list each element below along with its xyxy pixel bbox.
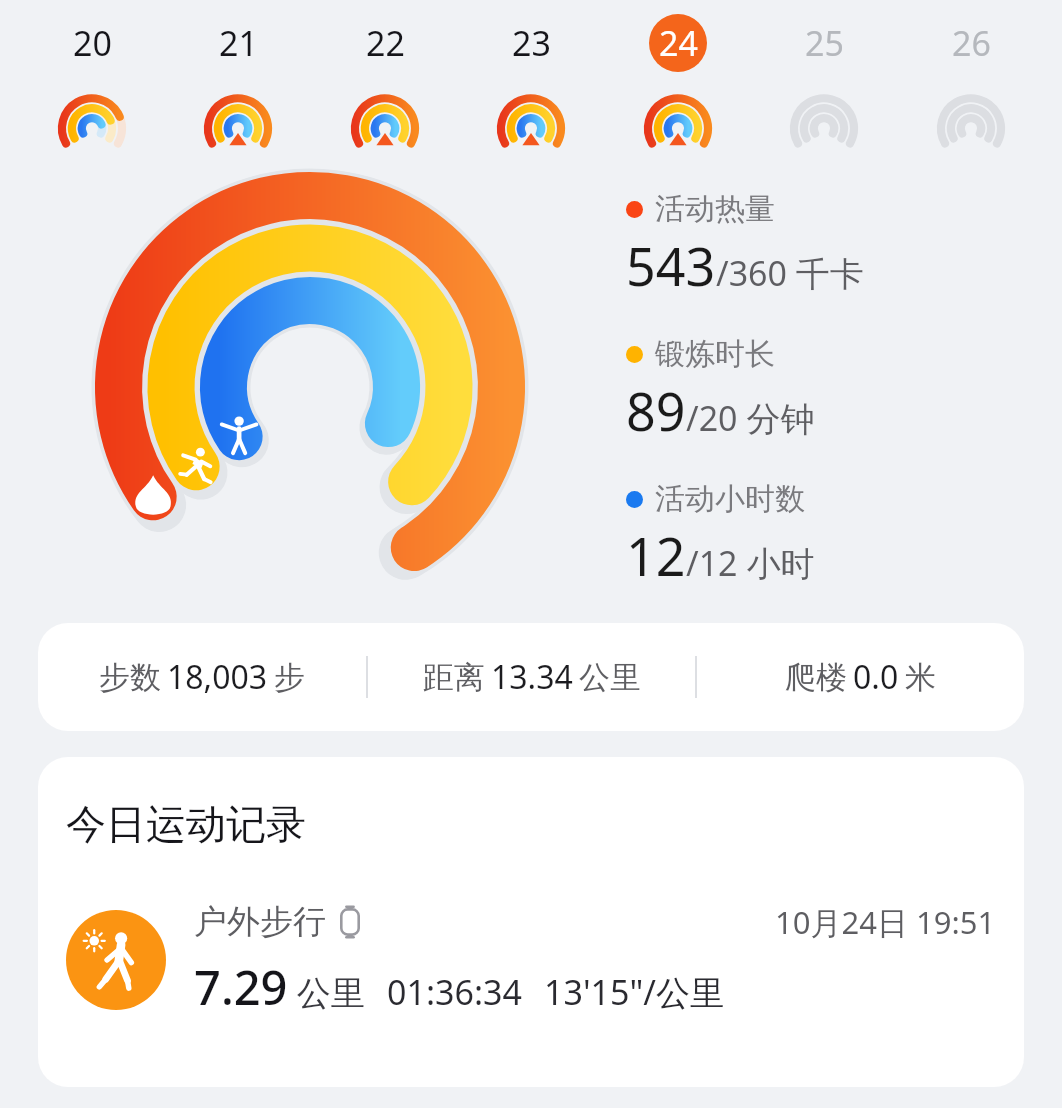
staticText: 7.29 — [194, 955, 288, 1019]
button[interactable]: 活动热量 — [626, 190, 864, 301]
staticText: 22 — [366, 20, 405, 66]
staticText: 23 — [512, 20, 551, 66]
staticText: 26 — [952, 20, 991, 66]
staticText: 12 — [626, 520, 686, 591]
staticText: /20 分钟 — [686, 395, 815, 441]
staticText: 21 — [219, 20, 258, 66]
staticText: 543 — [626, 230, 716, 301]
staticText: 爬楼 — [785, 658, 847, 697]
button[interactable]: 锻炼时长 — [626, 335, 815, 446]
staticText: 01:36:34 — [387, 969, 522, 1015]
staticText: 0.0 — [853, 655, 899, 699]
button[interactable]: 活动小时数 — [626, 480, 815, 591]
staticText: 步 — [274, 658, 305, 697]
staticText: 户外步行 — [194, 901, 326, 943]
button[interactable]: 户外步行 — [66, 901, 996, 1019]
staticText: 89 — [626, 375, 686, 446]
staticText: 25 — [805, 20, 844, 66]
staticText: 20 — [73, 20, 112, 66]
staticText: 公里 — [288, 969, 365, 1015]
button[interactable]: 21 — [183, 12, 293, 158]
staticText: 距离 — [423, 658, 485, 697]
staticText: /12 小时 — [686, 540, 815, 586]
staticText: 活动热量 — [655, 190, 775, 228]
staticText: 步数 — [99, 658, 161, 697]
button[interactable]: 23 — [476, 12, 586, 158]
staticText: 10月24日 19:51 — [775, 901, 996, 943]
staticText: 今日运动记录 — [66, 799, 306, 849]
button[interactable]: 22 — [330, 12, 440, 158]
button[interactable]: 26 — [916, 12, 1026, 158]
staticText: 活动小时数 — [655, 480, 805, 518]
staticText: 13.34 — [491, 655, 573, 699]
staticText: 24 — [659, 20, 698, 66]
button[interactable]: Activity rings — [0, 172, 620, 582]
staticText: 13'15"/公里 — [544, 969, 724, 1015]
staticText: 18,003 — [167, 655, 268, 699]
staticText: 公里 — [579, 658, 641, 697]
button[interactable]: 25 — [769, 12, 879, 158]
button[interactable]: 20 — [37, 12, 147, 158]
staticText: 米 — [905, 658, 936, 697]
button[interactable]: 24 — [623, 12, 733, 158]
staticText: /360 千卡 — [716, 250, 864, 296]
staticText: 锻炼时长 — [655, 335, 775, 373]
button[interactable]: 步数 — [38, 623, 1024, 731]
